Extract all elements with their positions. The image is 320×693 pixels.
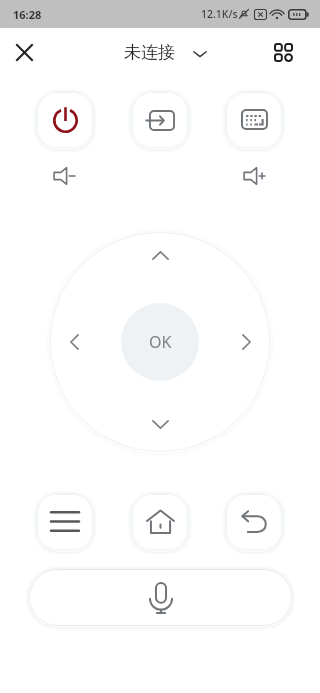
button[interactable]: Down xyxy=(140,404,180,444)
button[interactable]: Volume down xyxy=(42,154,86,198)
button[interactable]: Left xyxy=(54,322,94,362)
button[interactable]: Power xyxy=(34,89,96,151)
button[interactable]: Up xyxy=(140,235,180,275)
button[interactable]: Right xyxy=(226,322,266,362)
button[interactable]: Voice search xyxy=(26,566,295,629)
button[interactable]: Back xyxy=(223,491,285,553)
staticText: 未连接 xyxy=(124,42,175,63)
staticText: 16:28 xyxy=(13,7,42,22)
button[interactable]: Apps xyxy=(263,32,303,72)
button[interactable]: OK xyxy=(121,303,199,381)
staticText: OK xyxy=(149,331,172,353)
button[interactable]: 未连接 xyxy=(124,42,207,63)
button[interactable]: Close xyxy=(4,32,44,72)
button[interactable]: Menu xyxy=(34,491,96,553)
button[interactable]: Input source xyxy=(129,89,191,151)
button[interactable]: Home xyxy=(129,491,191,553)
button[interactable]: Keyboard xyxy=(223,89,285,151)
button[interactable]: Volume up xyxy=(232,154,276,198)
staticText: 12.1K/s xyxy=(201,7,238,21)
